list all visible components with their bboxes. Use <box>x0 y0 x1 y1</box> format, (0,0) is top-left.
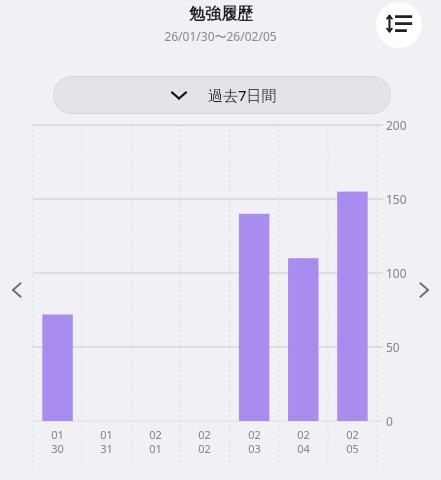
staticText: 150 <box>386 191 407 207</box>
button[interactable]: 02 04 <box>279 427 328 463</box>
staticText: 勉強履歴 <box>189 4 253 24</box>
staticText: 26/01/30〜26/02/05 <box>164 28 277 44</box>
button[interactable]: 01 30 <box>33 427 82 463</box>
button[interactable]: 01 31 <box>82 427 131 463</box>
staticText: 50 <box>386 339 400 355</box>
button[interactable]: 02 01 <box>131 427 180 463</box>
button[interactable]: Next <box>409 272 439 308</box>
staticText: 200 <box>386 117 407 133</box>
staticText: 02 02 <box>198 427 211 456</box>
staticText: 0 <box>386 413 393 429</box>
staticText: 01 31 <box>100 427 113 456</box>
button[interactable]: 過去7日間 <box>53 76 391 114</box>
staticText: 02 03 <box>248 427 261 456</box>
staticText: 100 <box>386 265 407 281</box>
staticText: 02 05 <box>346 427 359 456</box>
staticText: 02 04 <box>297 427 310 456</box>
button[interactable]: 02 02 <box>180 427 229 463</box>
staticText: 02 01 <box>149 427 162 456</box>
button[interactable]: 02 05 <box>328 427 377 463</box>
staticText: 01 30 <box>51 427 64 456</box>
staticText: 過去7日間 <box>208 85 277 105</box>
button[interactable]: Previous <box>2 272 32 308</box>
button[interactable]: Sort <box>376 2 422 48</box>
button[interactable]: 02 03 <box>230 427 279 463</box>
